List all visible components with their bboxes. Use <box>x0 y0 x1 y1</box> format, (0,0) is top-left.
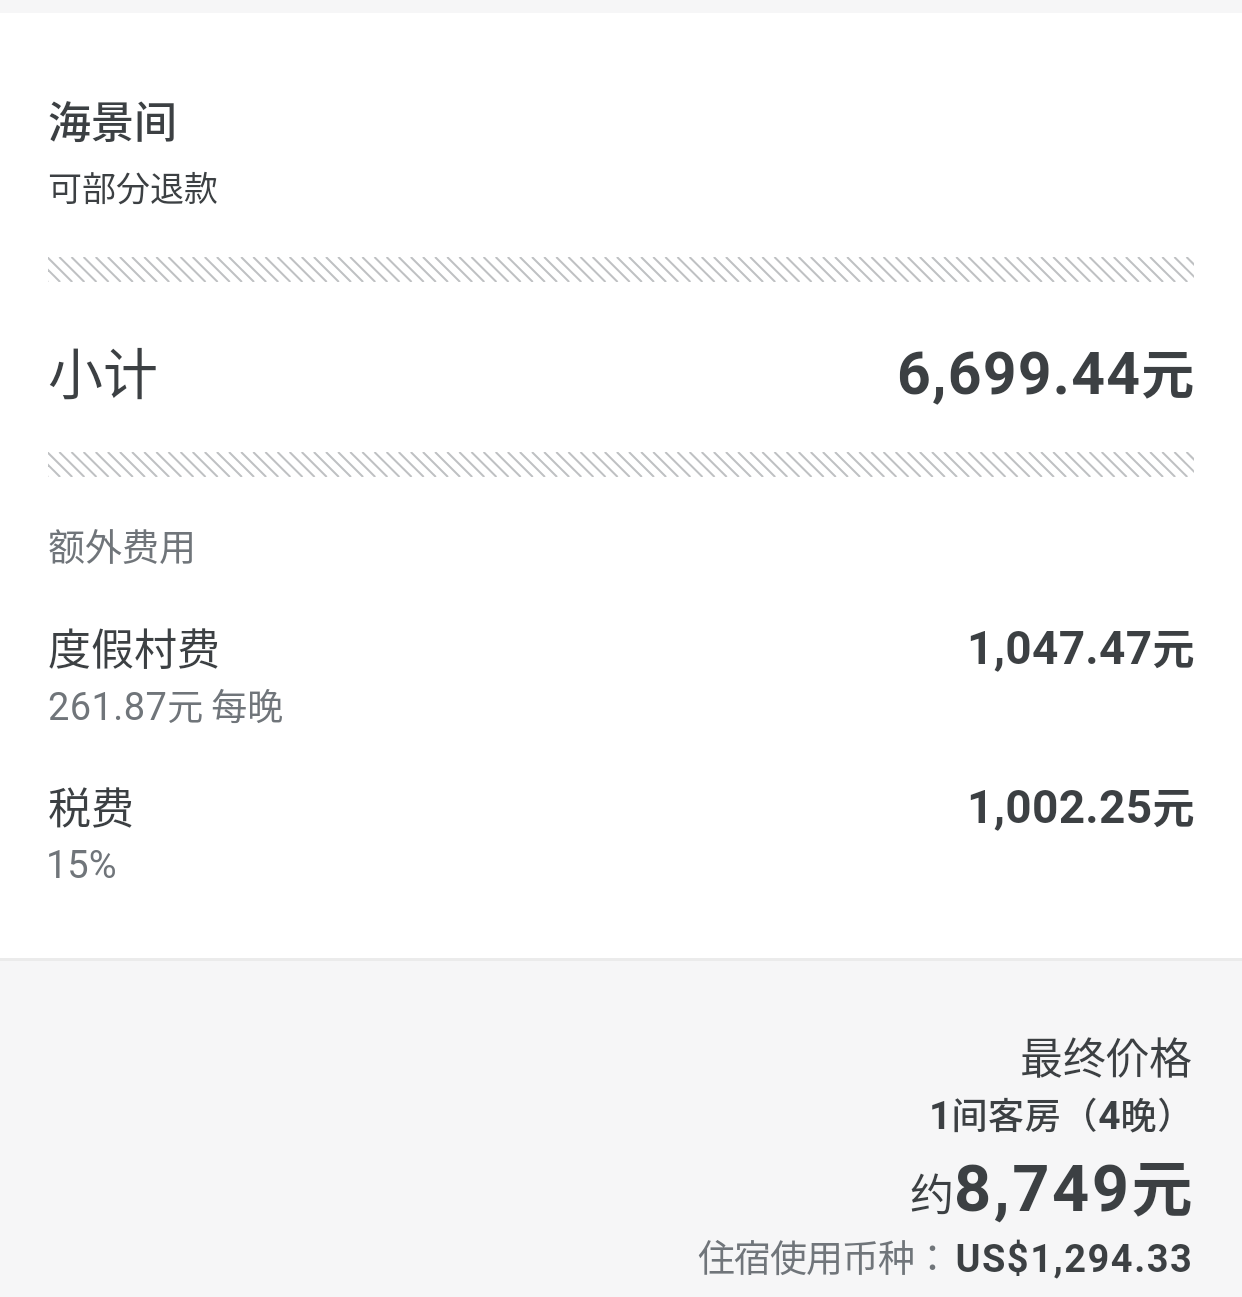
button[interactable]: 最终价格 约8,749元 <box>0 1000 1242 1290</box>
staticText: 15% <box>46 843 117 888</box>
staticText: 住宿使用币种： US$1,294.33 <box>698 1229 1194 1283</box>
staticText: 可部分退款 <box>48 162 218 211</box>
staticText: 海景间 <box>48 88 177 150</box>
staticText: 约8,749元 <box>910 1140 1193 1228</box>
button[interactable]: 海景间 可部分退款 <box>0 60 1242 225</box>
button[interactable]: 度假村费 1,047.47元 <box>0 596 1242 736</box>
staticText: 6,699.44元 <box>897 333 1195 410</box>
button[interactable]: 小计 6,699.44元 <box>0 290 1242 445</box>
staticText: 额外费用 <box>48 518 196 572</box>
button[interactable]: 税费 1,002.25元 <box>0 752 1242 892</box>
staticText: 最终价格 <box>1020 1024 1192 1086</box>
staticText: 税费 <box>48 774 134 836</box>
staticText: 1间客房（4晚） <box>929 1087 1194 1139</box>
staticText: 1,047.47元 <box>967 615 1195 676</box>
staticText: 小计 <box>48 330 159 410</box>
staticText: 261.87元 每晚 <box>48 678 284 730</box>
staticText: 1,002.25元 <box>967 774 1195 835</box>
staticText: 度假村费 <box>48 615 220 677</box>
